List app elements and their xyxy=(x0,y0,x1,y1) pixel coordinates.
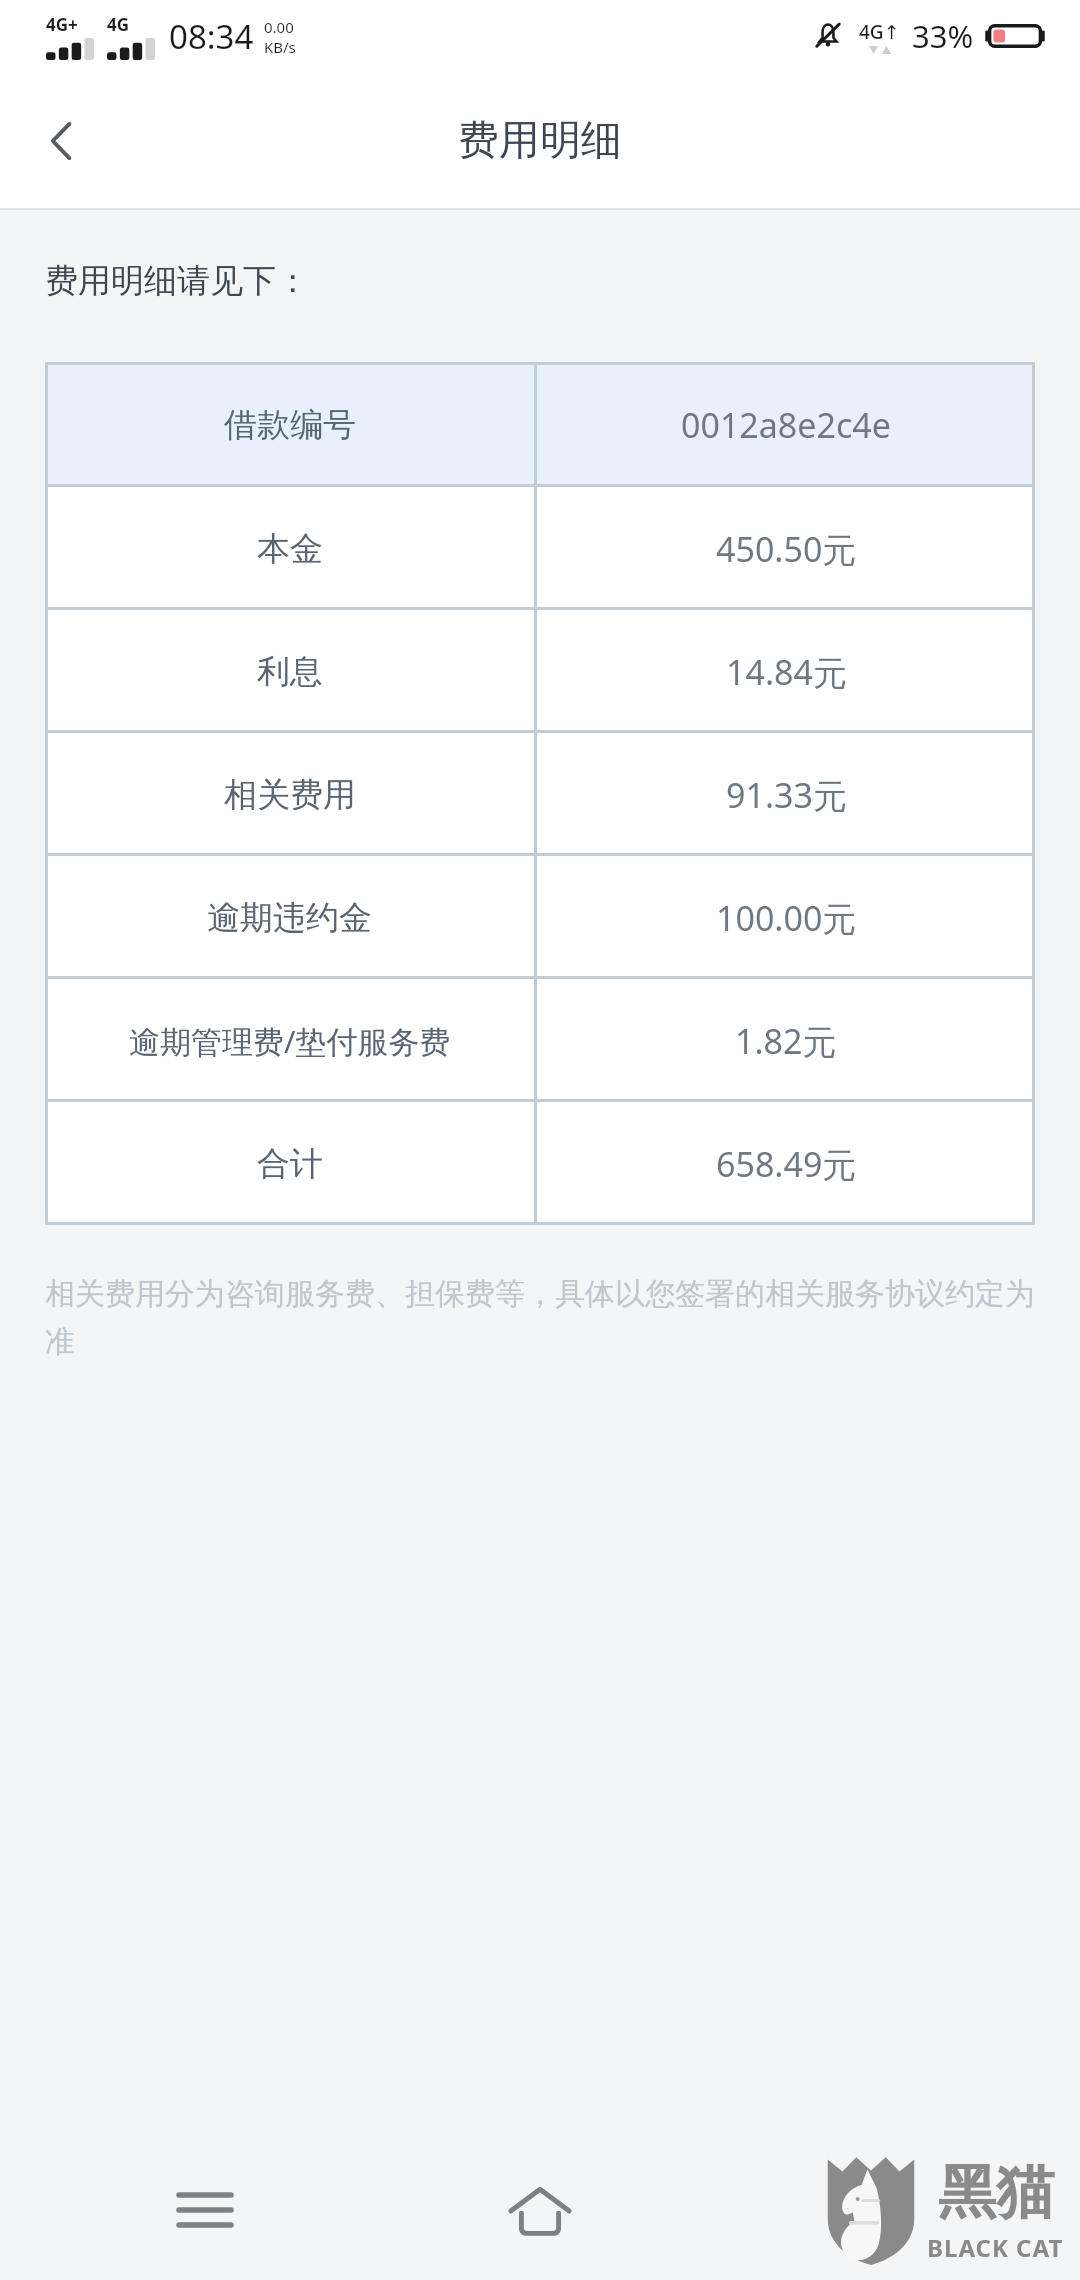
staticText: 4G↑ xyxy=(859,19,900,45)
staticText: 450.50元 xyxy=(716,526,857,572)
staticText: 0012a8e2c4e xyxy=(681,402,891,448)
button[interactable]: 逾期管理费/垫付服务费 xyxy=(45,979,1035,1102)
staticText: 借款编号 xyxy=(224,404,356,446)
staticText: 33% xyxy=(912,15,974,57)
staticText: 费用明细 xyxy=(458,115,622,167)
staticText: 4G+ xyxy=(46,13,78,36)
staticText: 100.00元 xyxy=(716,895,857,941)
button[interactable]: 相关费用 xyxy=(45,733,1035,856)
staticText: 黑猫 xyxy=(938,2156,1054,2229)
button[interactable]: 本金 xyxy=(45,487,1035,610)
staticText: KB/s xyxy=(264,37,296,57)
staticText: 相关费用 xyxy=(224,774,356,816)
staticText: 08:34 xyxy=(169,14,254,59)
button[interactable]: Menu xyxy=(150,2155,260,2265)
staticText: 逾期违约金 xyxy=(207,897,372,939)
button[interactable]: 逾期违约金 xyxy=(45,856,1035,979)
staticText: 4G xyxy=(107,13,130,36)
staticText: 1.82元 xyxy=(735,1018,837,1064)
staticText: 相关费用分为咨询服务费、担保费等，具体以您签署的相关服务协议约定为准 xyxy=(45,1275,1035,1361)
staticText: 合计 xyxy=(257,1143,323,1185)
button[interactable]: 利息 xyxy=(45,610,1035,733)
staticText: BLACK CAT xyxy=(927,2231,1064,2264)
staticText: 0.00 xyxy=(264,17,294,37)
staticText: 658.49元 xyxy=(716,1141,857,1187)
staticText: 费用明细请见下： xyxy=(45,260,309,302)
staticText: 本金 xyxy=(257,528,323,570)
button[interactable]: Home xyxy=(485,2155,595,2265)
button[interactable]: Back xyxy=(14,93,110,189)
staticText: 利息 xyxy=(257,651,323,693)
staticText: 91.33元 xyxy=(726,772,847,818)
button[interactable]: 合计 xyxy=(45,1102,1035,1225)
staticText: 逾期管理费/垫付服务费 xyxy=(129,1020,451,1062)
staticText: 14.84元 xyxy=(726,649,847,695)
